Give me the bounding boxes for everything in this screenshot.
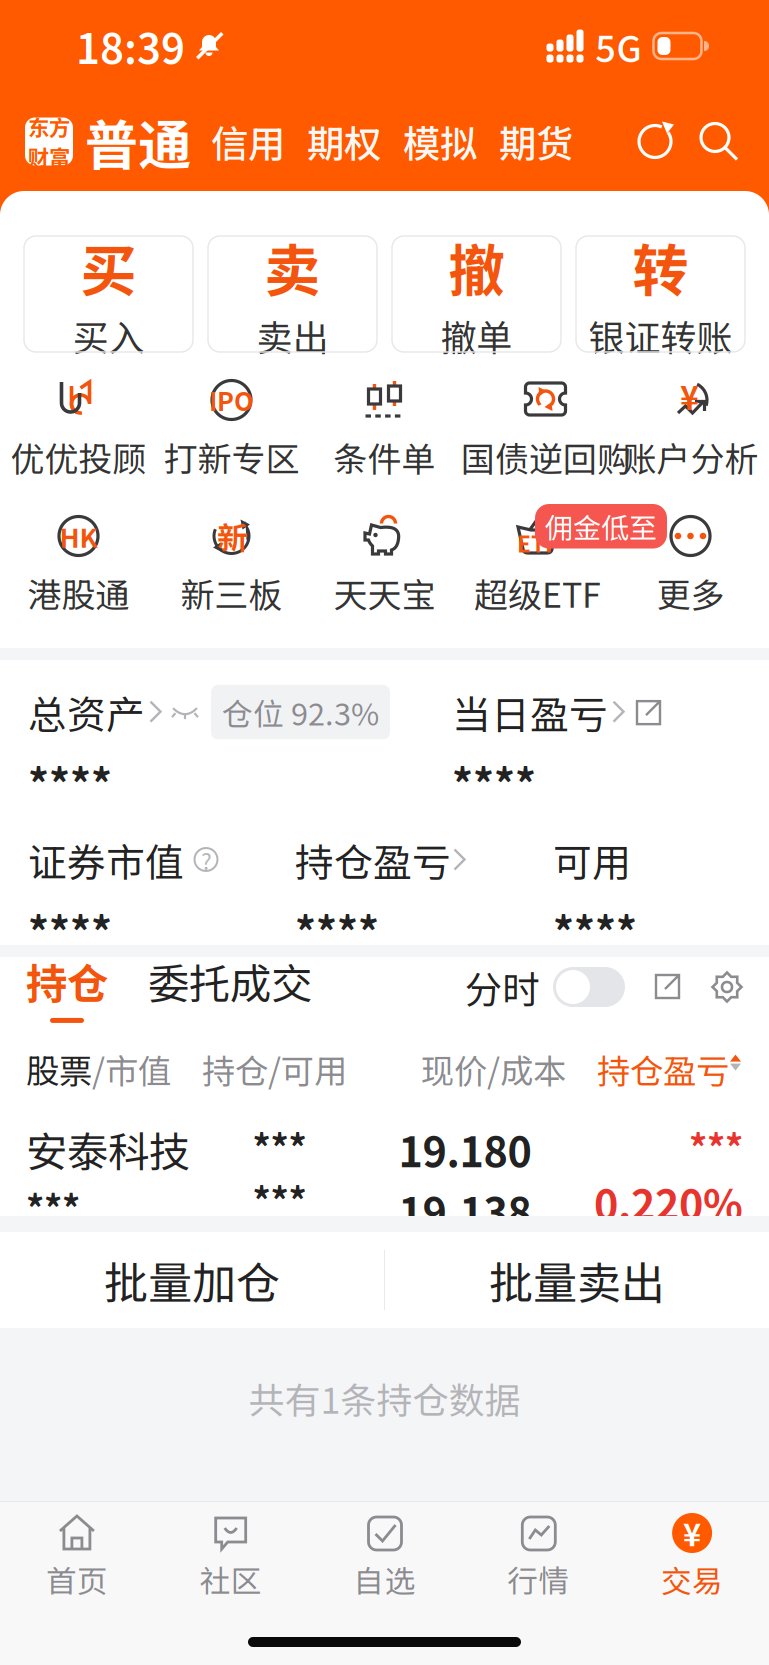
button[interactable]: Search [697, 119, 741, 163]
button[interactable]: 天天宝 [308, 512, 461, 608]
staticText: 优优投顾 [10, 432, 146, 482]
button[interactable]: 自选 [308, 1514, 461, 1601]
button[interactable]: IPO [155, 376, 308, 472]
button[interactable]: ETF [461, 512, 614, 608]
staticText: 更多 [656, 568, 724, 618]
staticText: 东方 [28, 111, 70, 142]
staticText: 委托成交 [148, 951, 312, 1011]
button[interactable]: 持仓 [26, 951, 108, 1023]
staticText: 买 [80, 226, 136, 307]
staticText: 天天宝 [333, 568, 435, 618]
button[interactable]: 安泰科技 [0, 1093, 769, 1240]
staticText: 港股通 [27, 568, 129, 618]
button[interactable]: 期权 [307, 114, 381, 169]
button[interactable]: 转 [576, 236, 745, 352]
staticText: 撤 [448, 226, 504, 307]
staticText: 批量卖出 [489, 1248, 665, 1312]
button[interactable]: 卖 [208, 236, 377, 352]
staticText: 自选 [353, 1557, 415, 1601]
button[interactable]: ¥ [615, 1514, 769, 1601]
button[interactable]: 优优投顾 [2, 376, 155, 472]
staticText: 19.180 [398, 1119, 531, 1179]
button[interactable]: 委托成交 [148, 951, 312, 1023]
button[interactable]: 买 [24, 236, 193, 352]
button[interactable]: 当日盈亏 [452, 684, 662, 811]
staticText: 超级ETF [474, 568, 601, 618]
staticText: HK [59, 517, 97, 555]
button[interactable]: 期货 [499, 114, 573, 169]
staticText: 财富 [28, 141, 70, 172]
staticText: 持仓盈亏 [295, 832, 451, 888]
button[interactable]: Refresh [633, 119, 677, 163]
staticText: 国债逆回购 [461, 432, 631, 482]
button[interactable]: 条件单 [308, 376, 461, 472]
staticText: 转 [632, 226, 688, 307]
staticText: 期货 [499, 114, 573, 169]
staticText: 持仓/可用 [202, 1045, 347, 1093]
staticText: 安泰科技 [26, 1119, 190, 1179]
staticText: 信用 [211, 114, 285, 169]
staticText: **** [28, 899, 112, 959]
staticText: 社区 [200, 1557, 262, 1601]
staticText: ¥ [683, 1511, 701, 1555]
button[interactable]: 模拟 [403, 114, 477, 169]
button[interactable]: 社区 [154, 1514, 308, 1601]
button[interactable]: 新 [155, 512, 308, 608]
staticText: 佣金低至 [545, 506, 657, 546]
staticText: **** [28, 751, 112, 811]
staticText: *** [26, 1180, 80, 1232]
staticText: 银证转账 [588, 309, 732, 362]
staticText: 股票 [26, 1045, 92, 1093]
button[interactable]: 批量卖出 [385, 1232, 769, 1328]
button[interactable]: 首页 [0, 1514, 154, 1601]
staticText: 18:39 [76, 16, 185, 76]
staticText: 行情 [507, 1557, 569, 1601]
staticText: 首页 [46, 1557, 108, 1601]
staticText: 条件单 [333, 432, 435, 482]
button[interactable]: 批量加仓 [0, 1232, 384, 1328]
staticText: *** [689, 1119, 743, 1171]
button[interactable]: ¥ [614, 376, 767, 472]
staticText: 持仓 [26, 951, 108, 1011]
staticText: 卖 [264, 226, 320, 307]
staticText: 5G [595, 20, 641, 72]
staticText: ¥ [680, 373, 699, 419]
staticText: ETF [517, 526, 558, 559]
staticText: 模拟 [403, 114, 477, 169]
staticText: 账户分析 [622, 432, 758, 482]
staticText: 打新专区 [163, 432, 299, 482]
staticText: 普通 [85, 103, 191, 180]
staticText: 分时 [465, 960, 539, 1014]
staticText: 持仓盈亏 [597, 1045, 729, 1093]
staticText: IPO [209, 382, 254, 418]
staticText: 可用 [553, 832, 631, 888]
button[interactable]: HK [2, 512, 155, 608]
staticText: 期权 [307, 114, 381, 169]
button[interactable]: Full screen [653, 972, 683, 1002]
staticText: ? [201, 844, 212, 876]
button[interactable]: 总资产 [28, 684, 452, 811]
button[interactable]: 更多 [614, 512, 767, 608]
button[interactable]: 国债逆回购 [461, 376, 614, 472]
staticText: 交易 [661, 1557, 723, 1601]
staticText: 撤单 [440, 309, 512, 362]
staticText: 新三板 [180, 568, 282, 618]
button[interactable]: 普通 [85, 103, 191, 180]
button[interactable]: Settings [711, 971, 743, 1003]
staticText: 现价/成本 [421, 1045, 566, 1093]
staticText: 仓位 92.3% [222, 690, 379, 734]
staticText: 总资产 [28, 684, 145, 740]
staticText: 卖出 [256, 309, 328, 362]
button[interactable]: 撤 [392, 236, 561, 352]
button[interactable]: 信用 [211, 114, 285, 169]
staticText: *** [252, 1119, 306, 1171]
staticText: **** [295, 899, 379, 959]
staticText: 共有1条持仓数据 [248, 1372, 520, 1424]
button[interactable]: 行情 [461, 1514, 615, 1601]
staticText: 买入 [72, 309, 144, 362]
staticText: 0.220% [594, 1172, 743, 1232]
staticText: **** [452, 751, 536, 811]
button[interactable]: Intraday chart toggle [553, 967, 625, 1007]
staticText: 证券市值 [28, 832, 184, 888]
button[interactable]: 持仓盈亏 [295, 832, 553, 959]
